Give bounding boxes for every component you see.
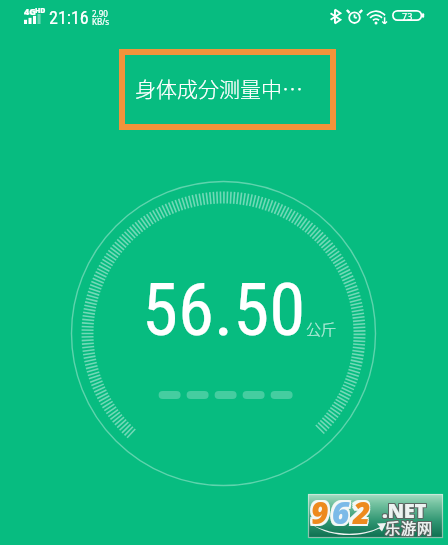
staticText: 身体成分测量中… xyxy=(135,73,303,103)
staticText: .NET xyxy=(383,497,428,524)
staticText: .NET xyxy=(381,498,426,525)
staticText: .NET xyxy=(381,497,426,524)
staticText: 乐游网 xyxy=(385,517,434,539)
staticText: KB/s xyxy=(92,16,109,27)
staticText: 2 xyxy=(353,492,374,533)
staticText: 962 xyxy=(309,490,371,531)
other: Signal strength xyxy=(24,14,42,24)
staticText: 9 xyxy=(311,492,332,533)
staticText: 962 xyxy=(313,494,375,535)
staticText: .NET xyxy=(382,498,427,525)
staticText: .NET xyxy=(382,496,427,523)
staticText: 962 xyxy=(309,494,371,535)
other: Wi-Fi xyxy=(367,10,387,24)
other: Bluetooth xyxy=(330,9,341,24)
staticText: 962 xyxy=(311,490,373,531)
staticText: 962 xyxy=(309,492,371,533)
staticText: .NET xyxy=(383,496,428,523)
staticText: 乐游网 xyxy=(386,518,435,540)
staticText: 2.90 xyxy=(92,8,108,19)
button[interactable]: 身体成分测量中… xyxy=(119,49,336,130)
staticText: 乐游网 xyxy=(386,516,435,538)
staticText: HD xyxy=(35,6,46,16)
staticText: 73 xyxy=(402,10,413,21)
staticText: 乐游网 xyxy=(385,518,434,540)
other: Alarm xyxy=(347,9,362,24)
other: Battery 73 percent xyxy=(392,10,425,21)
staticText: 6 xyxy=(332,492,353,533)
staticText: 乐游网 xyxy=(384,516,433,538)
staticText: .NET xyxy=(381,496,426,523)
staticText: .NET xyxy=(383,498,428,525)
staticText: 乐游网 xyxy=(385,516,434,538)
staticText: 乐游网 xyxy=(384,517,433,539)
staticText: 4G xyxy=(24,5,36,17)
staticText: 乐游网 xyxy=(386,517,435,539)
staticText: 962 xyxy=(311,494,373,535)
staticText: 962 xyxy=(313,490,375,531)
staticText: 962 xyxy=(313,492,375,533)
staticText: 乐游网 xyxy=(384,518,433,540)
staticText: 21:16 xyxy=(49,7,89,28)
staticText: 公斤 xyxy=(306,318,337,340)
staticText: 56.50 xyxy=(142,267,306,353)
staticText: .NET xyxy=(382,497,427,524)
